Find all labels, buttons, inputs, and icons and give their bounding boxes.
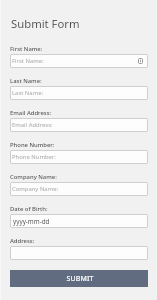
button[interactable]: yyyy-mm-dd [10, 214, 148, 228]
button[interactable]: Phone Number: [10, 141, 55, 149]
staticText: Submit Form [11, 16, 80, 31]
button[interactable]: Phone Number: [10, 150, 148, 164]
button[interactable]: SUBMIT [10, 270, 148, 287]
button[interactable]: Autofill [138, 58, 143, 64]
button[interactable]: Email Address: [10, 118, 148, 132]
staticText: Phone Number: [12, 153, 56, 161]
button[interactable]: Date of Birth: [10, 205, 48, 213]
button[interactable]: Email Address: [10, 109, 52, 117]
staticText: SUBMIT [66, 274, 94, 284]
button[interactable] [10, 246, 148, 260]
button[interactable]: First Name: [10, 45, 43, 53]
staticText: Company Name: [12, 185, 59, 193]
button[interactable]: Company Name: [10, 173, 57, 181]
button[interactable]: First Name: [10, 54, 148, 68]
staticText: yyyy-mm-dd [13, 217, 50, 226]
staticText: First Name: [12, 57, 44, 65]
button[interactable]: Company Name: [10, 182, 148, 196]
button[interactable]: Address: [10, 237, 35, 245]
staticText: Last Name: [12, 89, 44, 97]
button[interactable]: Last Name: [10, 86, 148, 100]
button[interactable]: Last Name: [10, 77, 42, 85]
staticText: Email Address: [12, 121, 53, 129]
